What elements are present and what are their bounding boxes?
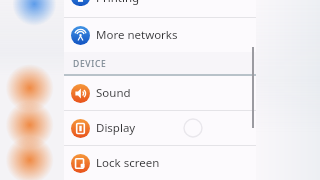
staticText: DEVICE: [73, 58, 107, 70]
button[interactable]: Display: [64, 111, 256, 145]
button[interactable]: More networks: [64, 18, 256, 52]
staticText: More networks: [96, 27, 178, 43]
staticText: Sound: [96, 85, 131, 101]
button[interactable]: Printing: [64, 0, 256, 17]
button[interactable]: Sound: [64, 76, 256, 110]
staticText: Printing: [96, 0, 140, 6]
staticText: Lock screen: [96, 155, 160, 171]
staticText: Display: [96, 120, 136, 136]
button[interactable]: Lock screen: [64, 146, 256, 180]
